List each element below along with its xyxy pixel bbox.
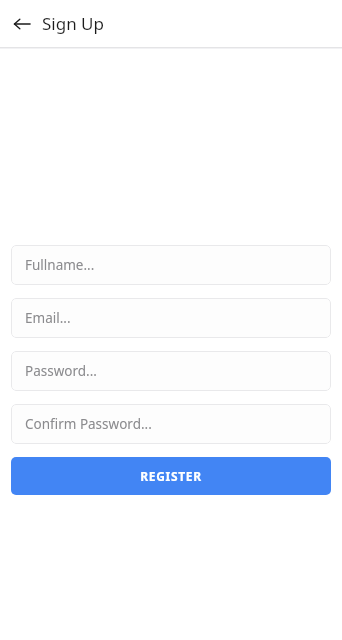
button[interactable]: Back bbox=[11, 13, 33, 35]
staticText: Fullname... bbox=[25, 256, 95, 274]
staticText: REGISTER bbox=[140, 468, 202, 484]
button[interactable]: Confirm Password... bbox=[11, 404, 331, 444]
button[interactable]: Fullname... bbox=[11, 245, 331, 285]
staticText: Confirm Password... bbox=[25, 415, 152, 433]
staticText: Sign Up bbox=[42, 12, 104, 35]
button[interactable]: Password... bbox=[11, 351, 331, 391]
button[interactable]: Email... bbox=[11, 298, 331, 338]
button[interactable]: REGISTER bbox=[11, 457, 331, 495]
staticText: Email... bbox=[25, 309, 71, 327]
staticText: Password... bbox=[25, 362, 97, 380]
